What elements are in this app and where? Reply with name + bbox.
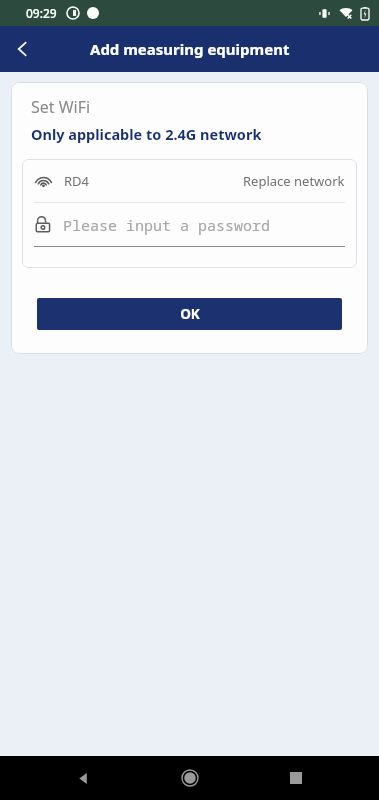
button[interactable]: RD4 xyxy=(22,159,357,202)
button[interactable]: Please input a password xyxy=(22,203,357,246)
staticText: Replace network xyxy=(243,172,345,190)
button[interactable]: OK xyxy=(37,298,342,330)
button[interactable]: Back xyxy=(59,756,107,800)
staticText: 09:29 xyxy=(26,5,57,21)
staticText: OK xyxy=(180,305,200,323)
staticText: Please input a password xyxy=(63,215,271,235)
staticText: RD4 xyxy=(64,172,90,190)
staticText: Only applicable to 2.4G network xyxy=(31,124,262,144)
staticText: Set WiFi xyxy=(31,96,91,118)
staticText: Add measuring equipment xyxy=(90,39,290,59)
button[interactable]: Recent apps xyxy=(272,756,320,800)
button[interactable]: Home xyxy=(166,756,214,800)
button[interactable]: Back xyxy=(0,26,46,72)
